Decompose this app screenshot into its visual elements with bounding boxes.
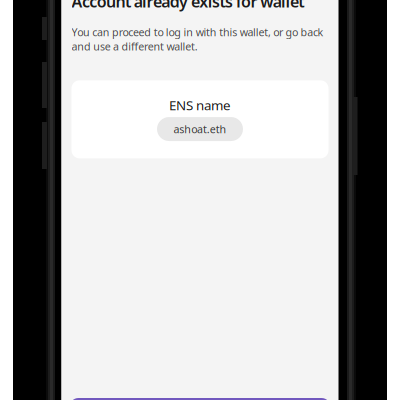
staticText: and use a different wallet.	[71, 39, 198, 53]
staticText: You can proceed to log in with this wall…	[71, 25, 324, 39]
staticText: ENS name	[169, 96, 231, 114]
button[interactable]: Log in	[69, 398, 330, 400]
staticText: ashoat.eth	[173, 122, 226, 136]
staticText: Account already exists for wallet	[71, 0, 304, 12]
